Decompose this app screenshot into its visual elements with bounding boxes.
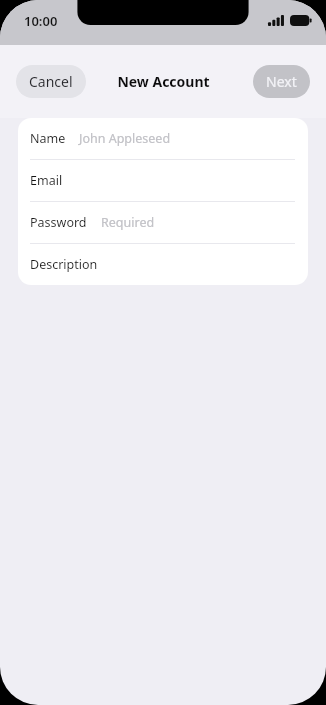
staticText: Cancel [29,72,73,91]
button[interactable]: Email [18,160,308,201]
button[interactable]: Password [18,202,308,243]
staticText: Required [101,214,155,231]
button[interactable]: Description [18,244,308,285]
button[interactable]: Cancel [16,65,86,98]
button[interactable]: Next [253,65,310,98]
staticText: New Account [117,72,210,91]
staticText: 10:00 [24,12,58,30]
staticText: Next [266,72,297,91]
staticText: Password [30,214,87,231]
button[interactable]: Name [18,118,308,159]
staticText: Description [30,256,98,273]
staticText: Name [30,130,66,147]
staticText: Email [30,172,63,189]
staticText: John Appleseed [79,130,171,147]
